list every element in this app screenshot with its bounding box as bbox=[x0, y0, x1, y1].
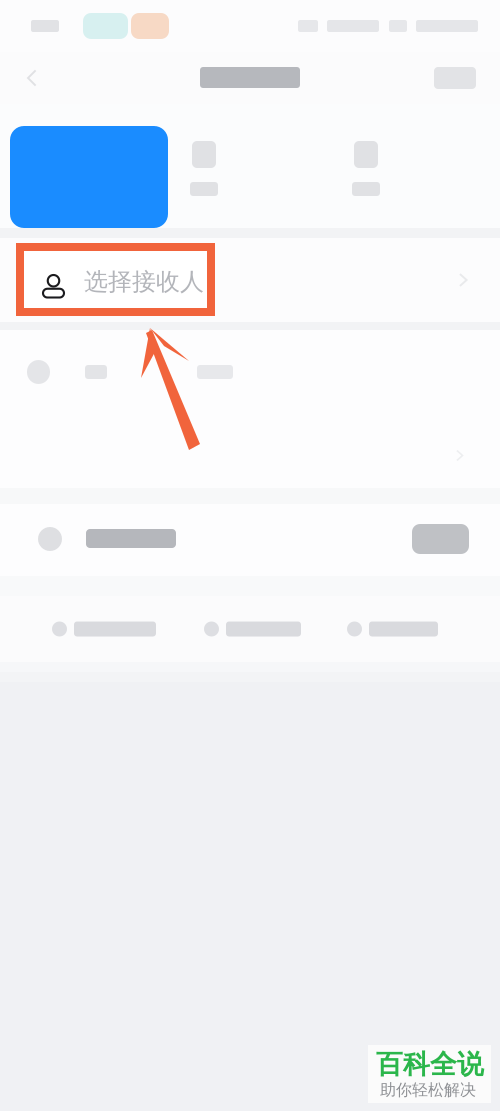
button[interactable]: Option bbox=[347, 616, 438, 642]
staticText: 选择接收人 bbox=[84, 267, 204, 296]
button[interactable]: Sender bbox=[0, 342, 500, 398]
button[interactable]: Action bbox=[189, 141, 219, 196]
staticText: 助你轻松解决 bbox=[380, 1080, 476, 1100]
button[interactable]: Action bbox=[412, 524, 469, 554]
button[interactable]: Back bbox=[10, 56, 54, 100]
button[interactable]: Option bbox=[52, 616, 156, 642]
button[interactable]: Action bbox=[351, 141, 381, 196]
button[interactable]: Option bbox=[204, 616, 301, 642]
button[interactable]: More bbox=[427, 56, 483, 100]
button[interactable]: 选择接收人 bbox=[0, 238, 500, 322]
staticText: 百科全说 bbox=[376, 1048, 484, 1081]
